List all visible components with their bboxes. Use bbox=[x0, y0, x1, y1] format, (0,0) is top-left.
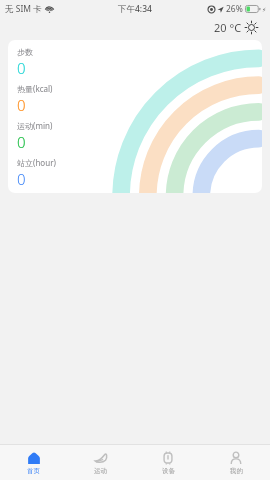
staticText: 设备 bbox=[162, 467, 175, 475]
button[interactable]: 20 °C bbox=[212, 19, 260, 36]
button[interactable]: 设备 bbox=[134, 445, 202, 480]
staticText: 0 bbox=[17, 169, 26, 189]
staticText: 0 bbox=[17, 132, 26, 152]
staticText: ⚡ bbox=[262, 6, 267, 13]
button[interactable]: 我的 bbox=[202, 445, 270, 480]
staticText: 运动(min) bbox=[17, 120, 53, 131]
staticText: 首页 bbox=[27, 467, 40, 475]
button[interactable]: 运动 bbox=[67, 445, 134, 480]
other: Sunny weather bbox=[245, 21, 258, 34]
staticText: 站立(hour) bbox=[17, 157, 56, 168]
staticText: 0 bbox=[17, 95, 26, 115]
staticText: 步数 bbox=[17, 47, 33, 57]
staticText: 0 bbox=[17, 58, 26, 78]
button[interactable]: 首页 bbox=[0, 445, 67, 480]
staticText: 热量(kcal) bbox=[17, 83, 53, 94]
staticText: 运动 bbox=[94, 467, 107, 475]
staticText: 无 SIM 卡 bbox=[5, 3, 42, 15]
button[interactable]: 步数 bbox=[8, 40, 262, 193]
staticText: 20 °C bbox=[214, 20, 242, 35]
staticText: 26% bbox=[226, 3, 243, 15]
staticText: 下午4:34 bbox=[118, 3, 152, 15]
staticText: 我的 bbox=[230, 467, 243, 475]
